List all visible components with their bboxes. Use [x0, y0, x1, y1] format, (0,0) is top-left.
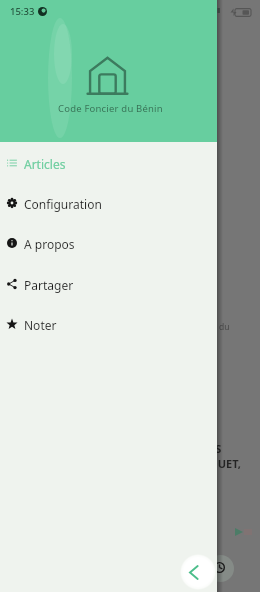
staticText: QUET,	[209, 456, 241, 471]
staticText: Noter	[24, 317, 57, 333]
button[interactable]: Back	[180, 554, 216, 590]
staticText: Configuration	[24, 196, 102, 212]
staticText: Partager	[24, 277, 74, 293]
staticText: A propos	[24, 236, 75, 252]
button[interactable]: Articles	[0, 144, 217, 184]
button[interactable]: Configuration	[0, 184, 217, 224]
staticText: du	[219, 321, 230, 333]
staticText: Code Foncier du Bénin	[58, 102, 163, 115]
button[interactable]: A propos	[0, 224, 217, 264]
staticText: Articles	[24, 156, 66, 172]
staticText: ES	[209, 441, 222, 456]
button[interactable]: Partager	[0, 265, 217, 305]
staticText: 15:33	[10, 5, 35, 18]
button[interactable]: Noter	[0, 305, 217, 345]
